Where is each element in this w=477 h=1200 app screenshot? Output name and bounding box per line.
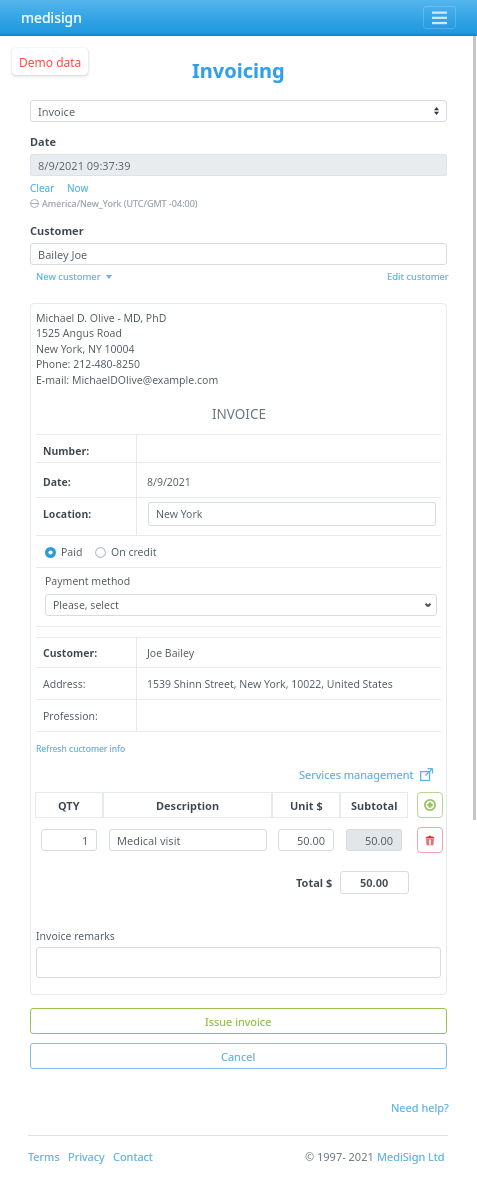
staticText: Services management bbox=[299, 767, 414, 782]
button[interactable]: Contact bbox=[113, 1149, 153, 1164]
staticText: Invoice remarks bbox=[36, 929, 115, 943]
staticText: Description bbox=[156, 798, 220, 813]
staticText: Michael D. Olive - MD, PhD bbox=[36, 311, 167, 325]
button[interactable]: Edit customer bbox=[387, 270, 449, 283]
button[interactable]: Add row bbox=[417, 792, 443, 818]
staticText: Location: bbox=[43, 507, 92, 521]
button[interactable]: Now bbox=[67, 181, 89, 195]
button[interactable]: Delete row bbox=[417, 827, 443, 853]
staticText: Please, select bbox=[53, 598, 119, 612]
staticText: E-mail: MichaelDOlive@example.com bbox=[36, 373, 219, 387]
staticText: Profession: bbox=[43, 709, 98, 723]
button[interactable]: New customer bbox=[30, 270, 112, 283]
button[interactable]: 1 bbox=[41, 829, 97, 851]
staticText: Address: bbox=[43, 677, 86, 691]
button[interactable] bbox=[36, 947, 441, 978]
button[interactable]: Menu bbox=[423, 6, 456, 29]
button[interactable]: 8/9/2021 09:37:39 bbox=[30, 154, 447, 176]
button[interactable]: Paid bbox=[45, 545, 83, 559]
staticText: New York bbox=[156, 507, 203, 521]
button[interactable]: Medical visit bbox=[109, 829, 267, 851]
button[interactable]: Cancel bbox=[30, 1043, 447, 1069]
staticText: Invoice bbox=[38, 104, 76, 119]
staticText: Cancel bbox=[221, 1049, 256, 1064]
staticText: New customer bbox=[36, 270, 101, 283]
staticText: 8/9/2021 09:37:39 bbox=[38, 158, 131, 173]
staticText: Customer bbox=[30, 223, 84, 238]
staticText: New York, NY 10004 bbox=[36, 342, 135, 356]
button[interactable]: On credit bbox=[95, 545, 157, 559]
button[interactable]: Demo data bbox=[12, 48, 88, 75]
button[interactable]: Services management bbox=[299, 767, 433, 782]
button[interactable]: 50.00 bbox=[278, 829, 334, 851]
button[interactable]: Bailey Joe bbox=[30, 243, 447, 265]
button[interactable]: Terms bbox=[28, 1149, 60, 1164]
staticText: Number: bbox=[43, 444, 90, 458]
staticText: Demo data bbox=[19, 54, 82, 70]
button[interactable]: MediSign Ltd bbox=[377, 1149, 445, 1164]
staticText: 1525 Angus Road bbox=[36, 326, 122, 340]
button[interactable]: Clear bbox=[30, 181, 55, 195]
staticText: Total $ bbox=[296, 875, 333, 890]
staticText: 50.00 bbox=[297, 833, 326, 848]
staticText: Date: bbox=[43, 475, 71, 489]
staticText: Medical visit bbox=[117, 833, 181, 848]
button[interactable]: New York bbox=[148, 502, 436, 526]
staticText: Subtotal bbox=[351, 798, 398, 813]
staticText: QTY bbox=[58, 798, 80, 813]
staticText: Paid bbox=[61, 545, 83, 559]
button[interactable]: Need help? bbox=[391, 1100, 449, 1115]
staticText: medisign bbox=[21, 8, 82, 27]
button[interactable]: Refresh cuctomer info bbox=[36, 743, 126, 755]
staticText: 1 bbox=[82, 833, 89, 848]
staticText: © 1997- 2021 bbox=[305, 1149, 377, 1164]
staticText: Joe Bailey bbox=[147, 646, 195, 660]
button[interactable]: 50.00 bbox=[346, 829, 402, 851]
staticText: Unit $ bbox=[290, 798, 323, 813]
button[interactable]: Invoice bbox=[30, 100, 447, 122]
button[interactable]: Issue invoice bbox=[30, 1008, 447, 1034]
staticText: Date bbox=[30, 134, 56, 149]
button[interactable]: Privacy bbox=[68, 1149, 105, 1164]
staticText: Payment method bbox=[45, 574, 131, 588]
staticText: 50.00 bbox=[360, 875, 389, 890]
staticText: America/New_York (UTC/GMT -04:00) bbox=[42, 197, 198, 209]
button[interactable]: Please, select bbox=[45, 594, 437, 616]
staticText: Bailey Joe bbox=[38, 247, 88, 262]
staticText: Phone: 212-480-8250 bbox=[36, 357, 140, 371]
staticText: On credit bbox=[111, 545, 157, 559]
staticText: Issue invoice bbox=[205, 1014, 272, 1029]
staticText: 50.00 bbox=[365, 833, 394, 848]
staticText: 1539 Shinn Street, New York, 10022, Unit… bbox=[147, 677, 393, 691]
staticText: 8/9/2021 bbox=[147, 475, 191, 489]
staticText: INVOICE bbox=[212, 405, 266, 423]
staticText: Customer: bbox=[43, 646, 98, 660]
staticText: Invoicing bbox=[192, 57, 285, 84]
